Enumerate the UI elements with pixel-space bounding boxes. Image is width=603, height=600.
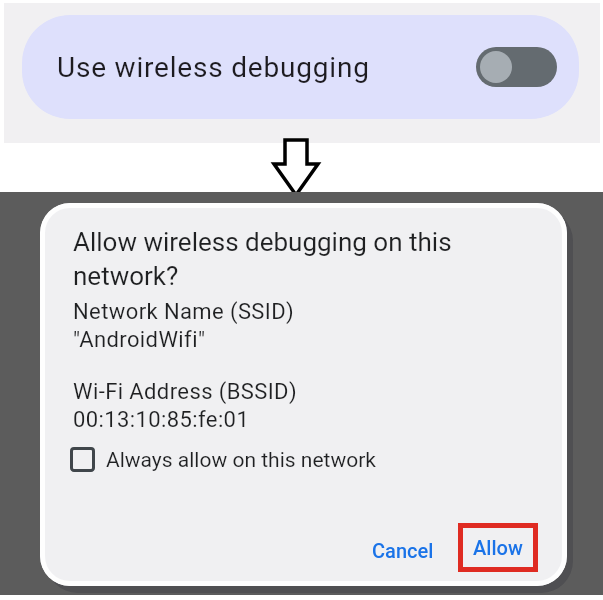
staticText: Network Name (SSID) "AndroidWifi": [73, 299, 295, 353]
staticText: Allow wireless debugging on this network…: [73, 227, 452, 291]
staticText: Allow: [473, 536, 523, 559]
button[interactable]: Use wireless debugging: [22, 15, 579, 119]
staticText: Cancel: [372, 539, 434, 562]
button[interactable]: Allow: [458, 523, 538, 572]
button[interactable]: Cancel: [348, 529, 458, 571]
button[interactable]: [70, 447, 95, 472]
staticText: Use wireless debugging: [57, 51, 370, 84]
staticText: Wi-Fi Address (BSSID) 00:13:10:85:fe:01: [73, 379, 298, 433]
button[interactable]: [476, 47, 557, 87]
staticText: Always allow on this network: [106, 448, 376, 473]
